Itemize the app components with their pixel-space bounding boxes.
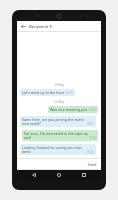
staticText: Send bbox=[88, 162, 97, 167]
button[interactable]: Back bbox=[20, 23, 26, 29]
button[interactable]: Let's meet up in the hour bbox=[20, 89, 75, 96]
staticText: Looking forward to seeing you next week bbox=[22, 145, 86, 154]
staticText: Was nice meeting you bbox=[50, 107, 88, 112]
staticText: Benjamin F. bbox=[29, 23, 53, 29]
staticText: Let's meet up in the hour bbox=[22, 90, 65, 95]
staticText: 10:24 bbox=[89, 136, 96, 140]
button[interactable]: Was nice meeting you bbox=[48, 106, 98, 113]
button[interactable]: Send bbox=[87, 161, 98, 168]
button[interactable]: Back bbox=[17, 21, 101, 31]
staticText: 10:20 bbox=[89, 108, 96, 112]
button[interactable]: Looking forward to seeing you next week bbox=[20, 144, 96, 155]
button[interactable]: Back bbox=[26, 170, 42, 180]
staticText: 10:21 bbox=[87, 122, 94, 126]
staticText: For sure, I'm interested in the topic as… bbox=[24, 131, 88, 140]
staticText: 23 May bbox=[54, 100, 65, 104]
staticText: 10:25 bbox=[87, 150, 94, 154]
staticText: Same here, are you joining the event nex… bbox=[22, 117, 86, 126]
button[interactable]: Same here, are you joining the event nex… bbox=[20, 116, 96, 127]
button[interactable]: Home bbox=[51, 170, 67, 180]
staticText: 10:15 bbox=[66, 91, 73, 95]
button[interactable]: Recent apps bbox=[76, 170, 92, 180]
staticText: 23 May bbox=[54, 83, 65, 87]
button[interactable]: For sure, I'm interested in the topic as… bbox=[22, 130, 98, 141]
